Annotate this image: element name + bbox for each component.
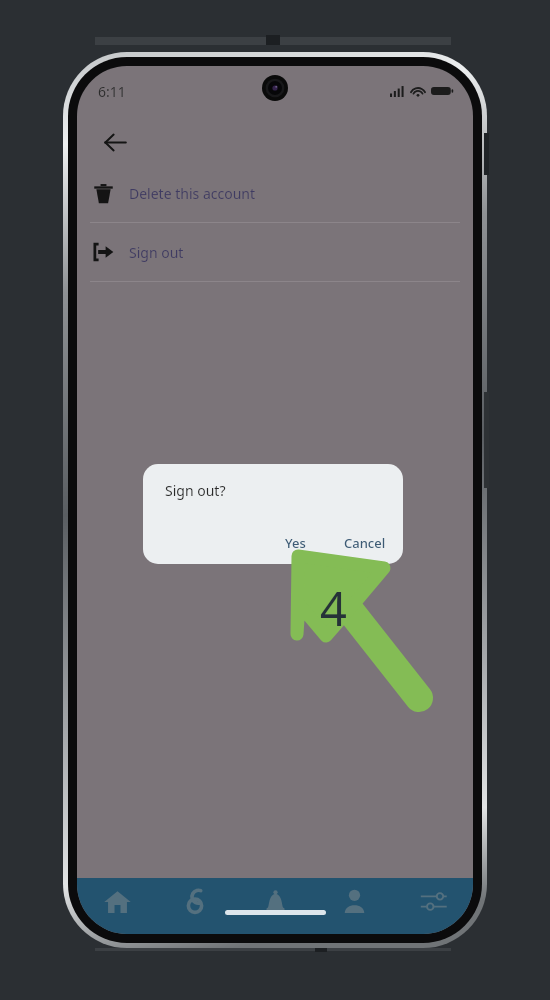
button[interactable]: Back (93, 120, 137, 164)
staticText: 6:11 (98, 82, 126, 101)
button[interactable]: Delete this account (77, 164, 473, 222)
staticText: 4 (320, 576, 347, 640)
button[interactable]: Home (77, 873, 157, 929)
button[interactable]: Notifications (236, 873, 315, 929)
staticText: Yes (285, 534, 306, 552)
button[interactable]: Settings (394, 873, 473, 929)
button[interactable]: Profile (315, 873, 394, 929)
button[interactable]: Activity (157, 873, 236, 929)
staticText: Delete this account (129, 184, 255, 203)
staticText: Sign out? (165, 481, 226, 500)
button[interactable]: Sign out (77, 223, 473, 281)
staticText: Cancel (344, 534, 386, 552)
button[interactable]: Cancel (334, 527, 396, 559)
button[interactable]: Yes (275, 527, 316, 559)
staticText: Sign out (129, 243, 184, 262)
